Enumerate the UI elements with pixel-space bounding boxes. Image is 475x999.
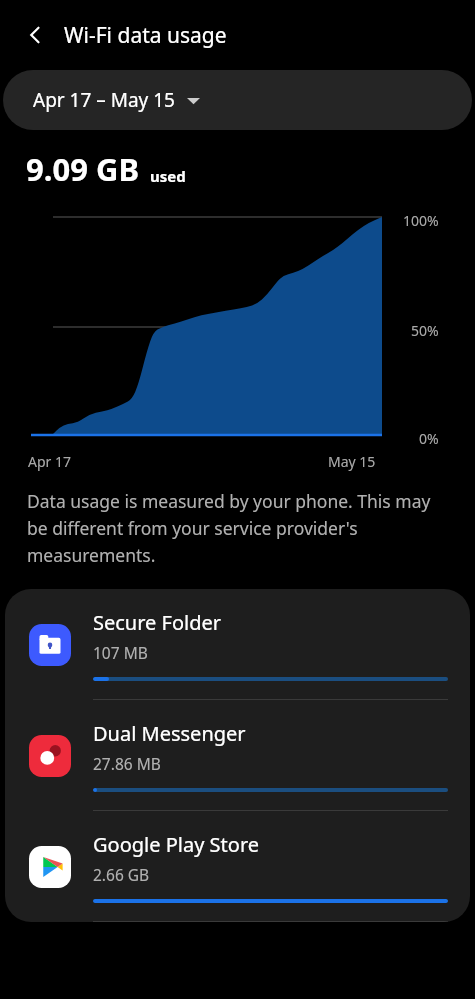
button[interactable]: Back xyxy=(18,18,52,52)
staticText: Data usage is measured by your phone. Th… xyxy=(27,489,455,567)
staticText: Apr 17 – May 15 xyxy=(33,87,175,113)
button[interactable]: Dual Messenger xyxy=(5,700,470,811)
staticText: Dual Messenger xyxy=(93,720,246,747)
button[interactable]: Apr 17 – May 15 xyxy=(3,70,472,130)
staticText: Wi-Fi data usage xyxy=(64,21,227,50)
staticText: 27.86 MB xyxy=(93,753,161,774)
staticText: Google Play Store xyxy=(93,831,260,858)
staticText: used xyxy=(150,166,186,186)
staticText: 100% xyxy=(403,211,439,230)
staticText: 2.66 GB xyxy=(93,864,150,885)
staticText: Secure Folder xyxy=(93,609,222,636)
staticText: 50% xyxy=(411,321,439,340)
button[interactable]: Google Play Store xyxy=(5,811,470,922)
staticText: 107 MB xyxy=(93,642,148,663)
staticText: Apr 17 xyxy=(28,452,71,471)
staticText: 9.09 GB xyxy=(26,148,140,190)
staticText: May 15 xyxy=(328,452,376,471)
staticText: 0% xyxy=(419,429,439,448)
button[interactable]: Secure Folder xyxy=(5,589,470,700)
